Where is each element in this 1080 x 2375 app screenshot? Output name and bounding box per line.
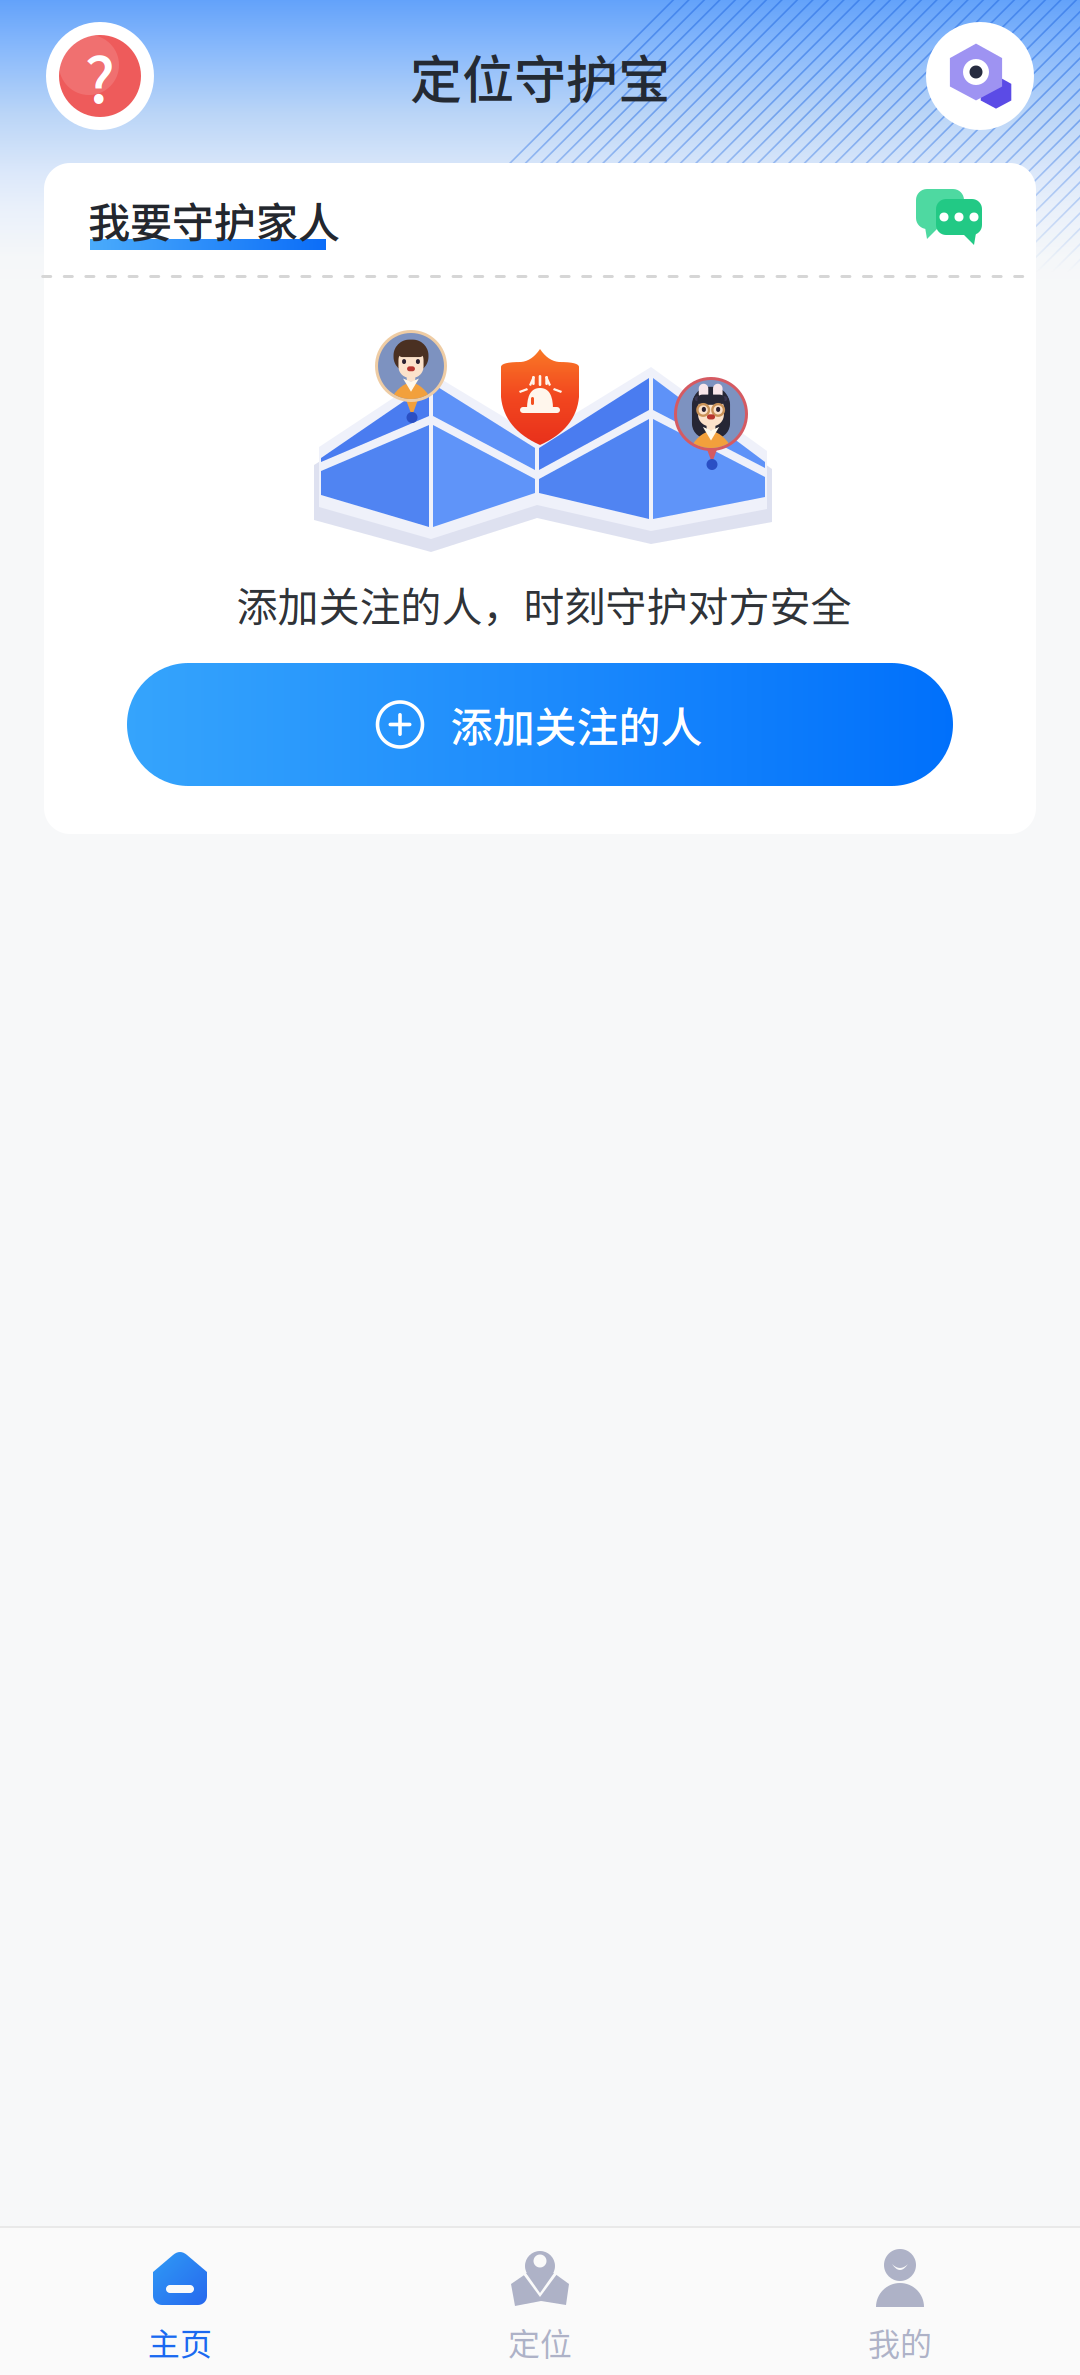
- staticText: 添加关注的人，时刻守护对方安全: [236, 574, 851, 634]
- button[interactable]: 扫一扫: [926, 22, 1034, 130]
- button[interactable]: 我的: [720, 2228, 1080, 2375]
- staticText: ?: [84, 31, 115, 121]
- staticText: 定位守护宝: [410, 38, 670, 114]
- button[interactable]: 定位: [360, 2228, 720, 2375]
- button[interactable]: 主页: [0, 2228, 360, 2375]
- button[interactable]: 帮助: [46, 22, 154, 130]
- staticText: 定位: [508, 2319, 572, 2365]
- staticText: 我要守护家人: [88, 190, 340, 250]
- button[interactable]: 消息: [916, 189, 982, 247]
- staticText: 我的: [868, 2319, 932, 2365]
- staticText: 主页: [148, 2319, 212, 2365]
- staticText: 添加关注的人: [450, 694, 702, 755]
- button[interactable]: 添加关注的人: [127, 663, 953, 786]
